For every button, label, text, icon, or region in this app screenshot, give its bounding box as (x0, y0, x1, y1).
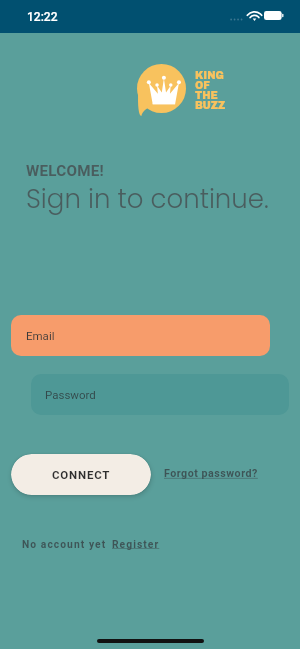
staticText: Sign in to continue. (26, 181, 269, 217)
staticText: Forgot password? (164, 467, 258, 480)
staticText: OF (195, 80, 210, 91)
staticText: No account yet (22, 538, 107, 550)
button[interactable]: Forgot password? (164, 467, 258, 480)
staticText: 12:22 (27, 10, 58, 24)
button[interactable]: Password (31, 374, 289, 415)
staticText: WELCOME! (26, 162, 104, 180)
button[interactable]: Register (112, 538, 160, 550)
staticText: CONNECT (52, 468, 111, 481)
staticText: KING (195, 70, 224, 81)
staticText: Password (45, 388, 96, 401)
staticText: Email (26, 329, 55, 342)
button[interactable]: CONNECT (11, 454, 151, 495)
staticText: BUZZ (195, 100, 226, 111)
staticText: Register (112, 538, 160, 550)
button[interactable]: Email (11, 315, 270, 356)
staticText: THE (195, 90, 218, 101)
